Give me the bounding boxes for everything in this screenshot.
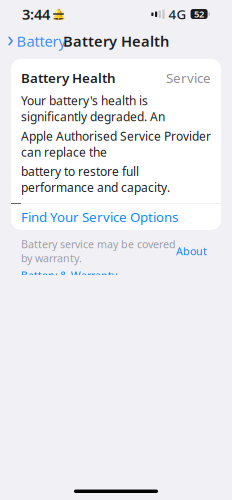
staticText: Battery Health bbox=[21, 69, 116, 87]
staticText: Battery service may be covered by warran… bbox=[21, 237, 176, 265]
staticText: Apple Authorised Service Provider can re… bbox=[21, 128, 211, 160]
staticText: 3:44 bbox=[22, 4, 50, 24]
staticText: Learn more... bbox=[115, 479, 182, 493]
staticText: Battery bbox=[16, 31, 65, 51]
staticText: 🔔 bbox=[52, 8, 65, 20]
staticText: Battery Health bbox=[63, 31, 169, 51]
staticText: 52 bbox=[194, 8, 204, 20]
button[interactable]: Battery bbox=[0, 26, 72, 56]
staticText: battery's capacity. bbox=[21, 479, 115, 493]
staticText: 4G bbox=[169, 5, 187, 23]
staticText: battery to restore full performance and … bbox=[21, 163, 170, 195]
button[interactable]: Find Your Service Options bbox=[11, 204, 221, 230]
staticText: Service bbox=[166, 69, 211, 87]
staticText: Find Your Service Options bbox=[21, 208, 178, 226]
staticText: About bbox=[176, 244, 207, 258]
staticText: Your battery's health is significantly d… bbox=[21, 93, 165, 125]
staticText: Battery & Warranty... bbox=[21, 268, 126, 282]
